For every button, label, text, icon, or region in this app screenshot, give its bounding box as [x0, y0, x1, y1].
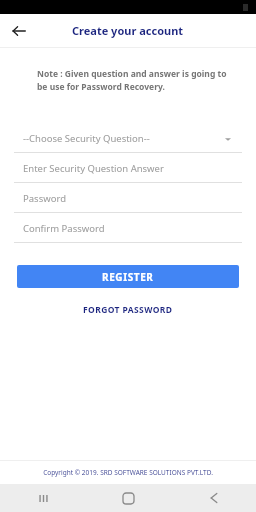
button[interactable]: Back	[6, 18, 32, 44]
staticText: REGISTER	[102, 270, 154, 284]
button[interactable]: --Choose Security Question--	[14, 124, 242, 153]
staticText: Create your account	[72, 23, 184, 38]
button[interactable]: Home	[86, 484, 171, 512]
staticText: Confirm Password	[23, 222, 242, 235]
button[interactable]: Password	[14, 184, 242, 213]
staticText: Password	[23, 192, 242, 205]
staticText: Note : Given question and answer is goin…	[37, 68, 227, 93]
button[interactable]: Back	[171, 484, 256, 512]
staticText: --Choose Security Question--	[23, 132, 224, 145]
button[interactable]: Enter Security Question Answer	[14, 154, 242, 183]
button[interactable]: FORGOT PASSWORD	[75, 301, 181, 319]
button[interactable]: REGISTER	[17, 265, 239, 288]
button[interactable]: Recent apps	[0, 484, 86, 512]
button[interactable]: Confirm Password	[14, 214, 242, 243]
staticText: Enter Security Question Answer	[23, 162, 242, 175]
staticText: FORGOT PASSWORD	[83, 304, 173, 316]
staticText: Copyright © 2019. SRD SOFTWARE SOLUTIONS…	[0, 468, 256, 477]
